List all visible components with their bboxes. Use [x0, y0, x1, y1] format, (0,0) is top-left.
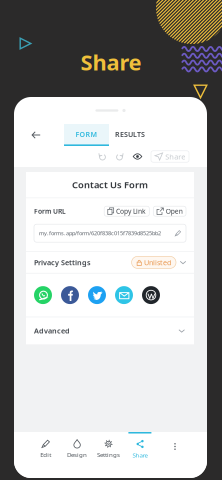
- button[interactable]: RESULTS: [109, 124, 151, 146]
- staticText: Design: [67, 450, 87, 459]
- button[interactable]: Share on Facebook: [61, 286, 79, 304]
- staticText: my.forms.app/form/620f838c015f7839d8525b…: [39, 229, 161, 237]
- button[interactable]: Expand privacy settings: [176, 255, 190, 269]
- button[interactable]: More options: [163, 432, 187, 461]
- staticText: Share: [165, 151, 185, 162]
- button[interactable]: Share by email: [115, 286, 133, 304]
- staticText: Form URL: [34, 207, 66, 216]
- button[interactable]: Back: [14, 124, 58, 146]
- staticText: Open: [166, 207, 183, 216]
- button[interactable]: Share on WhatsApp: [34, 286, 52, 304]
- staticText: Contact Us Form: [72, 178, 148, 191]
- staticText: Edit: [40, 450, 51, 459]
- staticText: FORM: [75, 129, 97, 139]
- staticText: Share: [132, 451, 147, 459]
- staticText: Share: [80, 47, 141, 77]
- button[interactable]: Edit: [30, 432, 61, 461]
- button[interactable]: Share: [151, 151, 189, 162]
- button[interactable]: Settings: [93, 432, 124, 461]
- button[interactable]: Advanced: [26, 317, 194, 344]
- button[interactable]: Edit link: [175, 230, 181, 236]
- button[interactable]: Design: [61, 432, 93, 461]
- button[interactable]: Share on Twitter: [88, 286, 106, 304]
- staticText: Settings: [97, 450, 120, 459]
- button[interactable]: Open: [153, 206, 186, 216]
- button[interactable]: Copy Link: [104, 206, 149, 216]
- staticText: RESULTS: [115, 129, 145, 139]
- button[interactable]: FORM: [64, 124, 109, 146]
- button[interactable]: Share: [124, 432, 156, 461]
- staticText: Unlisted: [144, 257, 171, 267]
- button[interactable]: Unlisted: [132, 256, 176, 268]
- button[interactable]: Share on WordPress: [142, 286, 160, 304]
- button[interactable]: Undo: [94, 149, 111, 164]
- staticText: Copy Link: [116, 207, 146, 216]
- button[interactable]: Preview: [128, 149, 147, 164]
- button[interactable]: Redo: [111, 149, 128, 164]
- staticText: Advanced: [34, 326, 70, 336]
- staticText: Privacy Settings: [34, 257, 91, 267]
